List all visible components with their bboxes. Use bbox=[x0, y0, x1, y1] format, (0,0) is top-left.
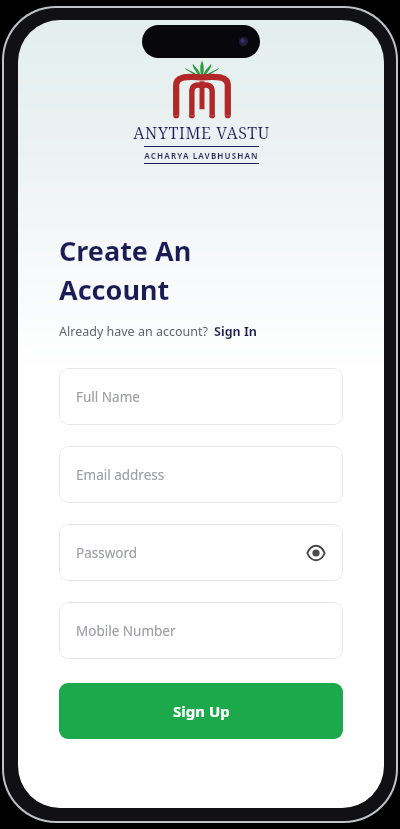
staticText: ACHARYA LAVBHUSHAN bbox=[144, 150, 259, 161]
staticText: Sign In bbox=[214, 323, 257, 340]
staticText: Mobile Number bbox=[76, 622, 176, 640]
button[interactable]: Full Name bbox=[59, 368, 343, 425]
staticText: Password bbox=[76, 544, 138, 562]
button[interactable]: Email address bbox=[59, 446, 343, 503]
staticText: Email address bbox=[76, 466, 165, 484]
button[interactable]: Sign Up bbox=[59, 683, 343, 739]
staticText: Already have an account? bbox=[59, 323, 208, 340]
staticText: ANYTIME VASTU bbox=[133, 122, 270, 144]
staticText: Full Name bbox=[76, 388, 140, 406]
button[interactable]: Mobile Number bbox=[59, 602, 343, 659]
button[interactable]: Sign In bbox=[214, 323, 257, 340]
staticText: Sign Up bbox=[173, 701, 230, 721]
staticText: Create An bbox=[59, 232, 192, 269]
button[interactable]: Password bbox=[59, 524, 343, 581]
staticText: Account bbox=[59, 271, 170, 308]
button[interactable]: Toggle password visibility bbox=[303, 540, 329, 566]
